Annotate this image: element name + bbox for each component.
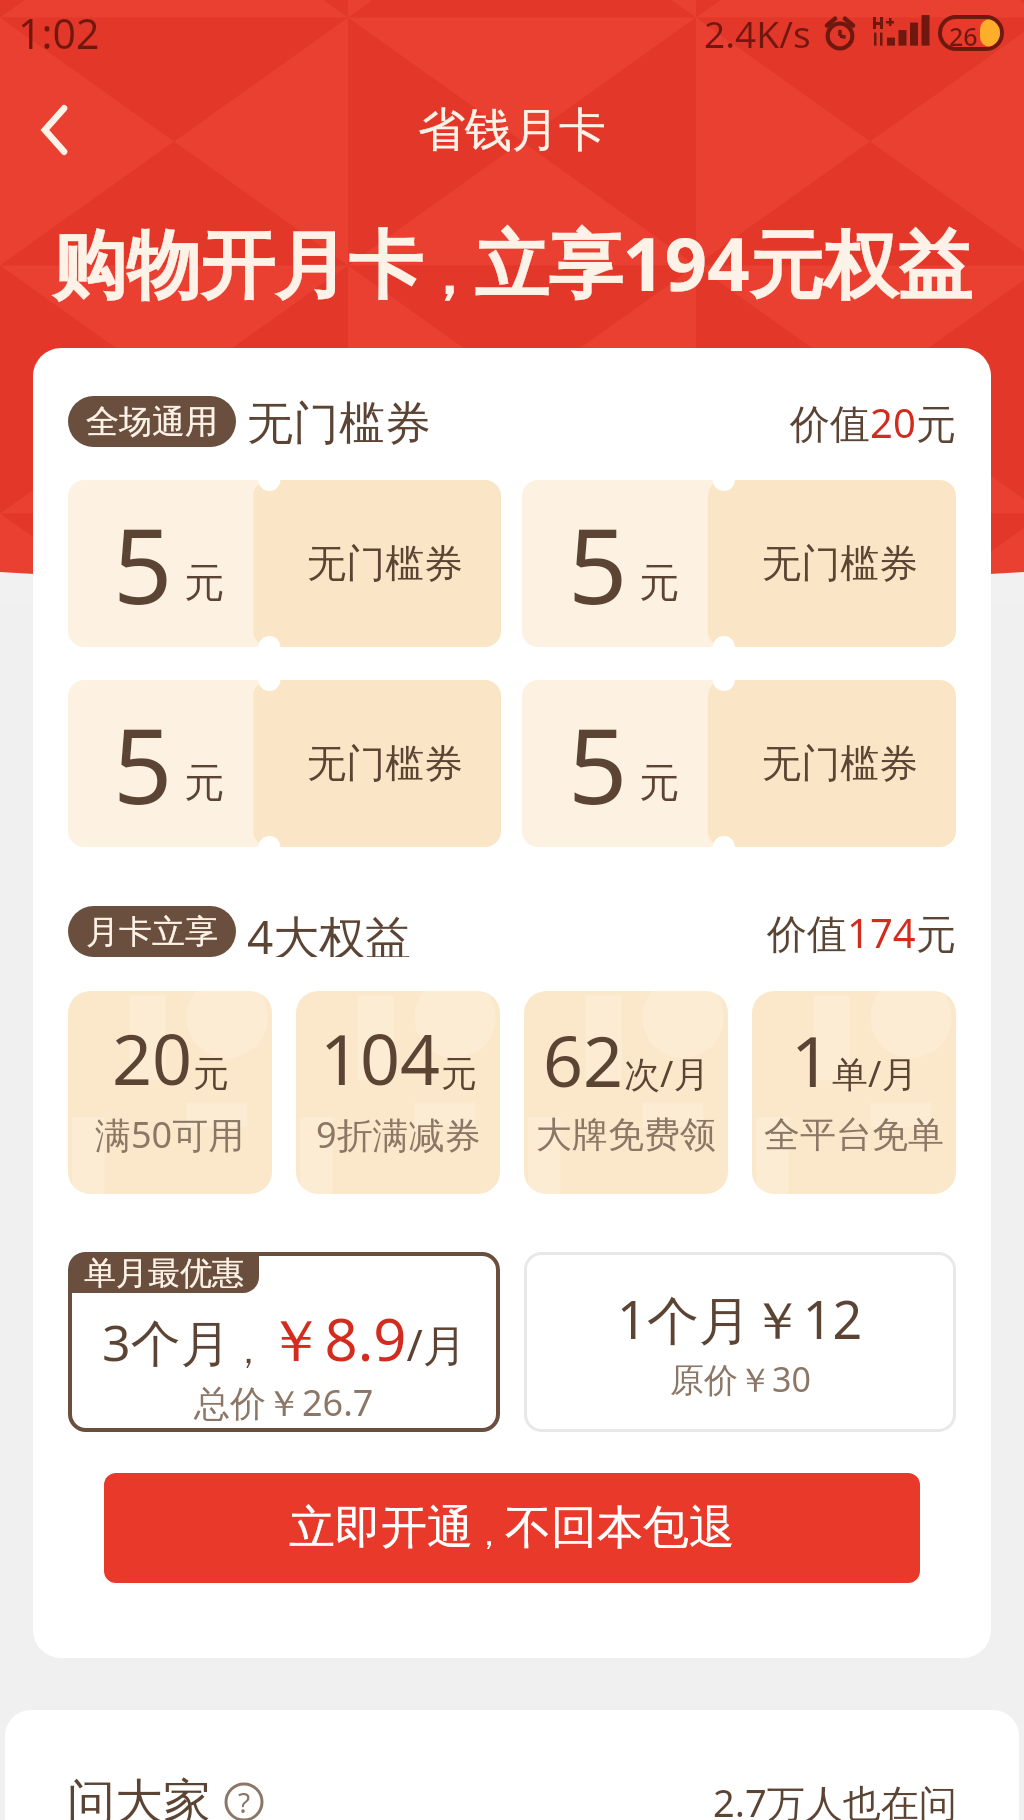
staticText: 价值20元: [790, 395, 956, 447]
staticText: 价值174元: [767, 905, 956, 957]
staticText: 无门槛券: [762, 739, 918, 788]
button[interactable]: 5: [522, 680, 956, 847]
staticText: 3个月，￥8.9/月: [102, 1299, 467, 1378]
staticText: 满50可用: [95, 1110, 245, 1159]
staticText: 5: [568, 493, 628, 635]
button[interactable]: Back: [18, 92, 94, 168]
staticText: 元: [184, 557, 224, 607]
staticText: 省钱月卡: [418, 101, 606, 160]
staticText: 62: [543, 1012, 624, 1107]
staticText: 元: [441, 1051, 477, 1096]
staticText: 26: [949, 19, 978, 47]
button[interactable]: 5: [68, 480, 501, 647]
staticText: 1: [791, 1012, 832, 1107]
staticText: 无门槛券: [307, 539, 463, 588]
staticText: 全平台免单: [764, 1112, 944, 1157]
button[interactable]: 立即开通，不回本包退: [104, 1473, 920, 1583]
staticText: 5: [113, 693, 173, 835]
staticText: 无门槛券: [247, 395, 431, 447]
staticText: 2.7万人也在问: [713, 1776, 957, 1820]
staticText: 月卡立享: [86, 911, 218, 953]
staticText: 1:02: [18, 5, 100, 61]
staticText: 元: [184, 757, 224, 807]
button[interactable]: 单月最优惠: [68, 1252, 500, 1432]
staticText: 4大权益: [247, 905, 412, 957]
staticText: 购物开月卡，立享194元权益: [0, 212, 1024, 313]
staticText: 次/月: [624, 1049, 710, 1098]
staticText: 立即开通，不回本包退: [289, 1499, 735, 1557]
button[interactable]: 20: [68, 991, 272, 1194]
staticText: 9折满减券: [316, 1110, 481, 1159]
staticText: 元: [639, 757, 679, 807]
staticText: 20: [112, 1010, 193, 1105]
button[interactable]: 5: [68, 680, 501, 847]
staticText: 5: [568, 693, 628, 835]
staticText: 总价￥26.7: [194, 1378, 374, 1427]
staticText: 104: [320, 1010, 441, 1105]
staticText: 单/月: [832, 1049, 918, 1098]
staticText: 无门槛券: [762, 539, 918, 588]
staticText: 无门槛券: [307, 739, 463, 788]
staticText: 2.4K/s: [704, 8, 811, 58]
staticText: 元: [193, 1051, 229, 1096]
staticText: 全场通用: [86, 401, 218, 443]
staticText: 原价￥30: [670, 1356, 811, 1402]
staticText: ?: [238, 1783, 251, 1820]
button[interactable]: 62: [524, 991, 728, 1194]
button[interactable]: 1个月￥12: [524, 1252, 956, 1432]
button[interactable]: 104: [296, 991, 500, 1194]
button[interactable]: 1: [752, 991, 956, 1194]
button[interactable]: 5: [522, 480, 956, 647]
staticText: 单月最优惠: [84, 1253, 244, 1293]
staticText: 5: [113, 493, 173, 635]
staticText: 问大家: [67, 1772, 211, 1820]
staticText: 大牌免费领: [536, 1112, 716, 1157]
staticText: 元: [639, 557, 679, 607]
staticText: 1个月￥12: [617, 1283, 863, 1354]
